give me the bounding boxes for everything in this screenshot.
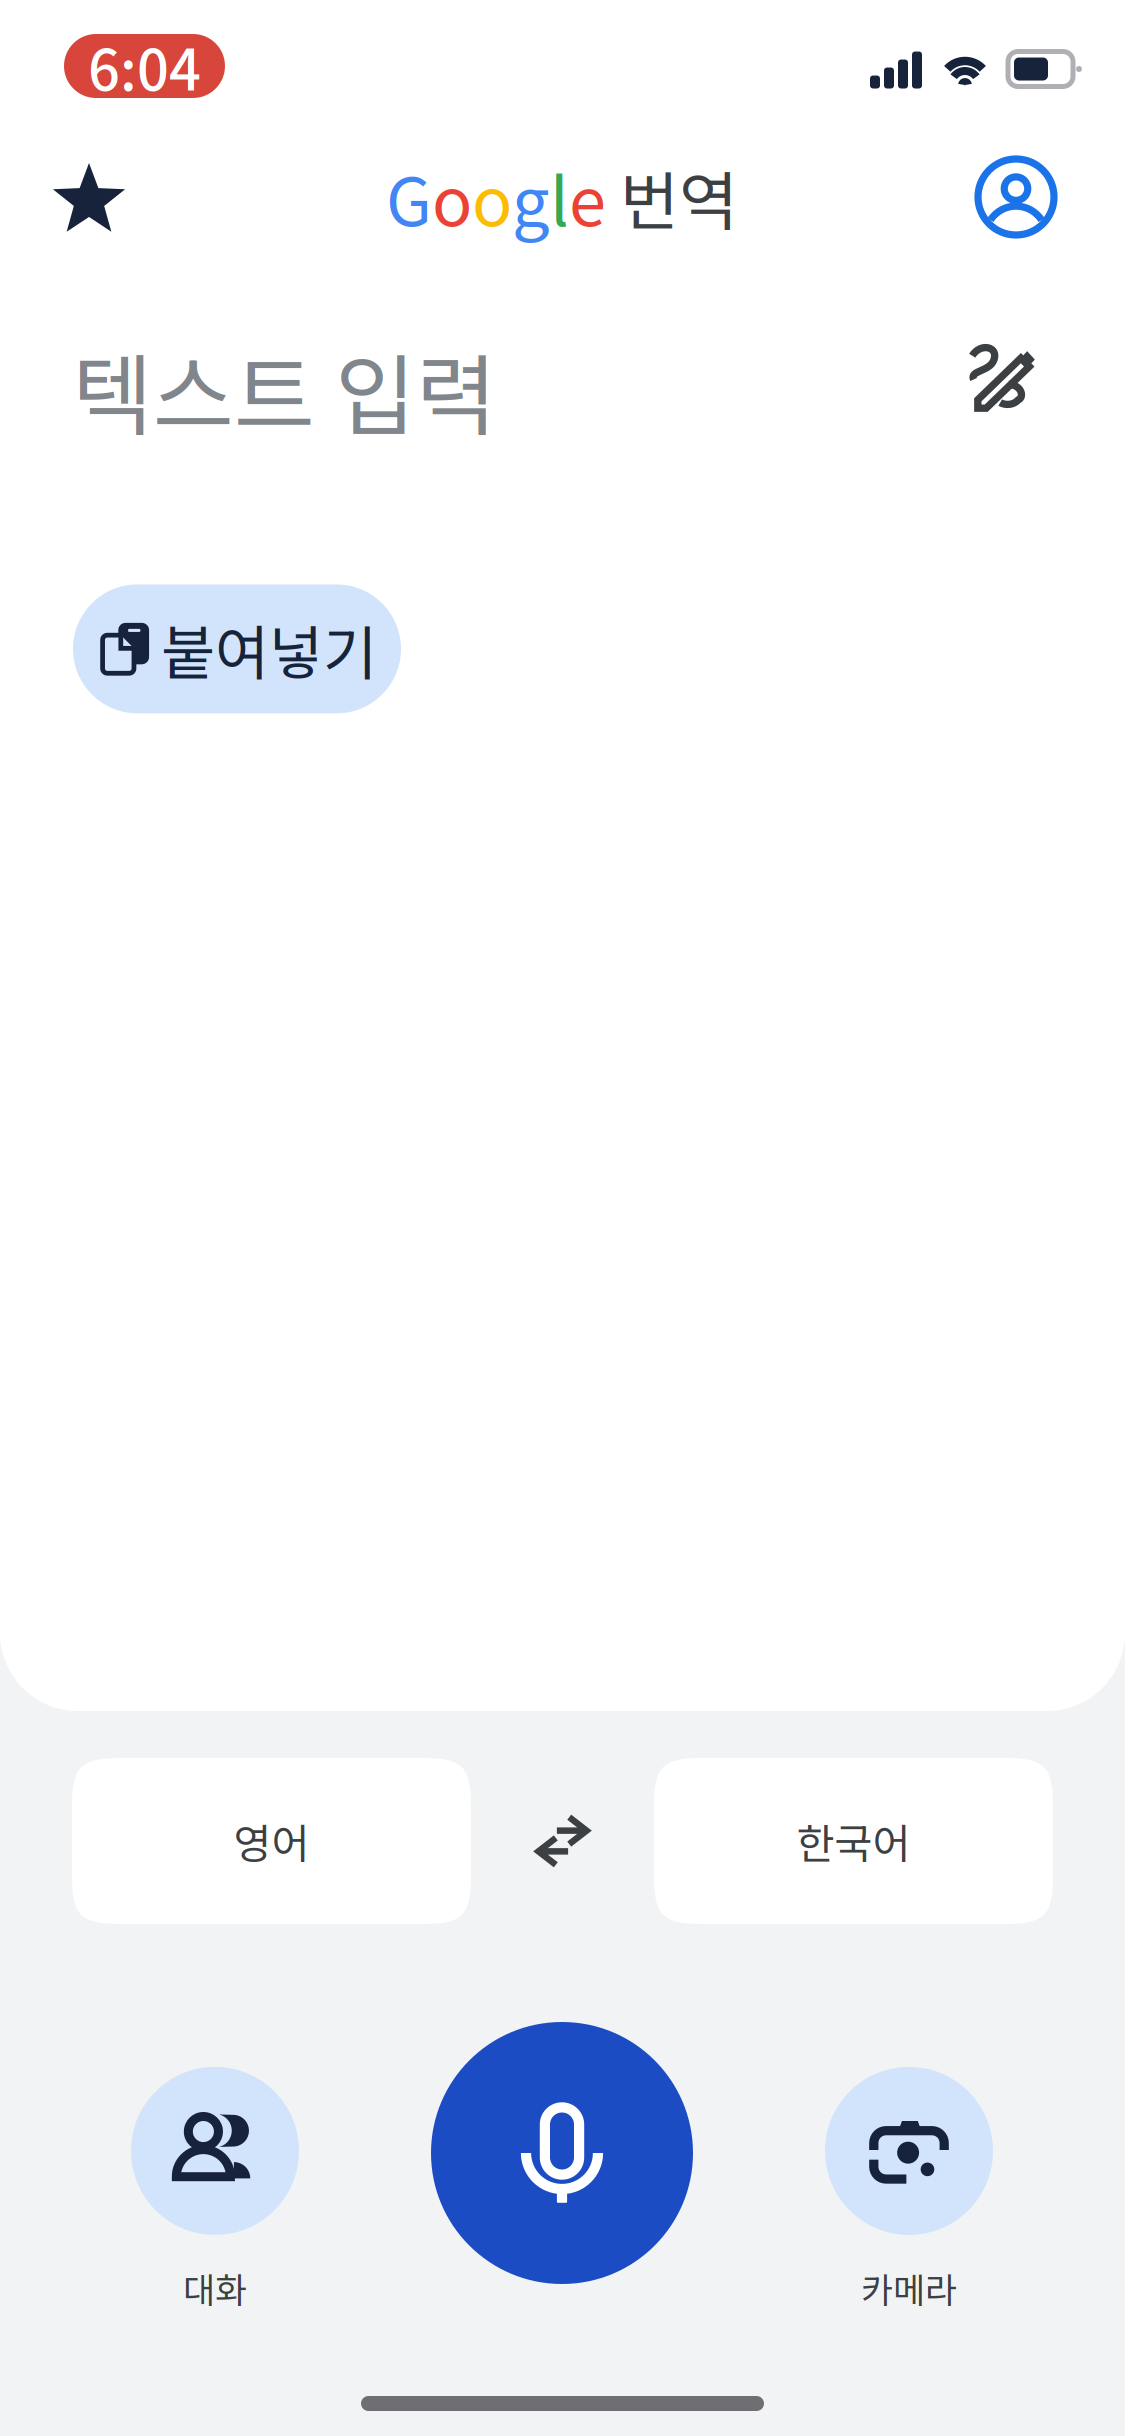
staticText: o <box>472 149 512 245</box>
button[interactable]: Saved <box>29 141 149 261</box>
staticText: 카메라 <box>861 2263 957 2313</box>
button[interactable]: 대화 <box>100 2067 330 2313</box>
button[interactable]: Handwriting <box>953 326 1053 426</box>
button[interactable]: 붙여넣기 <box>73 584 401 713</box>
staticText: e <box>569 149 606 245</box>
button[interactable]: Speak <box>431 2022 693 2284</box>
staticText: 영어 <box>233 1811 309 1871</box>
staticText: 대화 <box>183 2263 247 2313</box>
staticText: 붙여넣기 <box>161 606 377 691</box>
button[interactable]: 영어 <box>72 1758 471 1924</box>
staticText: G <box>386 149 432 245</box>
button[interactable]: Swap languages <box>502 1781 622 1901</box>
staticText: l <box>550 149 569 245</box>
staticText: 텍스트 입력 <box>72 326 497 453</box>
staticText: 한국어 <box>796 1811 910 1871</box>
staticText: o <box>432 149 472 245</box>
button[interactable]: Account <box>956 137 1076 257</box>
button[interactable]: 한국어 <box>654 1758 1053 1924</box>
button[interactable]: 카메라 <box>794 2067 1024 2313</box>
staticText: 6:04 <box>88 25 201 107</box>
staticText: g <box>512 149 550 245</box>
staticText: 번역 <box>606 151 738 243</box>
